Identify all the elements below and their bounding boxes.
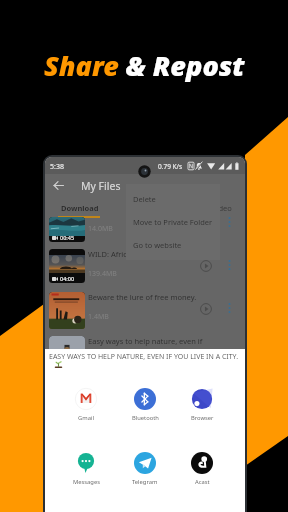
staticText: Messages [73,478,100,486]
staticText: My Files [81,179,121,193]
staticText: Delete [133,194,156,204]
button[interactable]: 04:00 [49,249,85,283]
button[interactable]: More options [224,259,235,270]
button[interactable]: More options [224,216,235,227]
button[interactable]: Go to website [126,235,220,255]
button[interactable]: Delete [126,189,220,209]
button[interactable]: Browser [178,388,226,422]
button[interactable]: Video [205,201,239,215]
staticText: Browser [191,414,214,422]
staticText: Download [61,203,99,213]
button[interactable]: Play [199,302,213,316]
button[interactable]: Move to Private Folder [126,212,220,232]
staticText: Easy ways to help nature, even if [88,336,213,346]
staticText: 00:45 [60,234,75,241]
staticText: 0.79 K/s [158,162,183,171]
staticText: 5:38 [50,162,64,172]
button[interactable]: 00:45 [49,217,85,242]
button[interactable]: More options [224,302,235,313]
button[interactable]: Messages [62,452,110,486]
button[interactable]: Play [199,259,213,273]
staticText: Telegram [132,478,158,486]
button[interactable]: Telegram [121,452,169,486]
staticText: 1.4MB [88,312,109,322]
button[interactable] [49,292,85,329]
staticText: Beware the lure of free money. [88,292,213,302]
staticText: EASY WAYS TO HELP NATURE, EVEN IF YOU LI… [49,352,239,362]
staticText: & Repost [126,47,245,84]
staticText: Gmail [78,414,94,422]
staticText: 14.0MB [88,224,113,234]
staticText: 04:00 [60,275,75,282]
staticText: Video [212,203,232,213]
button[interactable]: Bluetooth [121,388,169,422]
button[interactable]: Back [50,177,67,194]
staticText: 139.4MB [88,269,117,279]
staticText: Bluetooth [132,414,159,422]
staticText: Acast [195,478,210,486]
staticText: Go to website [133,240,182,250]
staticText: WILD: Africa [88,249,213,259]
button[interactable] [49,336,85,373]
staticText: Move to Private Folder [133,217,213,227]
button[interactable]: Gmail [62,388,110,422]
button[interactable]: Acast [178,452,226,486]
button[interactable]: Download [58,201,102,215]
staticText: Share [44,47,126,84]
